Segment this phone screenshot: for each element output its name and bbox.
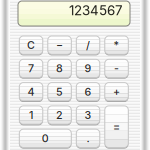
- staticText: 4: [28, 85, 35, 98]
- button[interactable]: -: [105, 59, 128, 78]
- staticText: 3: [84, 109, 91, 121]
- staticText: 2: [56, 109, 63, 121]
- staticText: 6: [84, 85, 91, 98]
- button[interactable]: 1: [19, 106, 43, 124]
- staticText: +: [113, 85, 120, 98]
- button[interactable]: 0: [19, 129, 71, 147]
- staticText: C: [27, 39, 35, 52]
- button[interactable]: 4: [19, 83, 43, 101]
- staticText: 0: [42, 132, 49, 145]
- button[interactable]: =: [105, 106, 128, 147]
- button[interactable]: +: [105, 83, 128, 101]
- staticText: 9: [84, 62, 91, 75]
- button[interactable]: 5: [48, 83, 71, 101]
- button[interactable]: 7: [19, 59, 43, 78]
- staticText: *: [113, 39, 119, 52]
- button[interactable]: 3: [76, 106, 100, 124]
- staticText: /: [86, 39, 90, 52]
- staticText: 5: [56, 85, 63, 98]
- staticText: −: [56, 39, 63, 52]
- button[interactable]: 8: [48, 59, 71, 78]
- button[interactable]: 9: [76, 59, 100, 78]
- button[interactable]: /: [76, 36, 100, 54]
- button[interactable]: 2: [48, 106, 71, 124]
- staticText: 1: [29, 109, 33, 121]
- button[interactable]: −: [48, 36, 71, 54]
- button[interactable]: 6: [76, 83, 100, 101]
- button[interactable]: C: [19, 36, 43, 54]
- staticText: 8: [56, 62, 63, 75]
- staticText: 7: [28, 62, 34, 75]
- button[interactable]: .: [76, 129, 100, 147]
- staticText: =: [113, 120, 120, 133]
- button[interactable]: *: [105, 36, 128, 54]
- staticText: .: [86, 132, 89, 145]
- staticText: -: [114, 62, 119, 75]
- staticText: 1234567: [69, 2, 123, 18]
